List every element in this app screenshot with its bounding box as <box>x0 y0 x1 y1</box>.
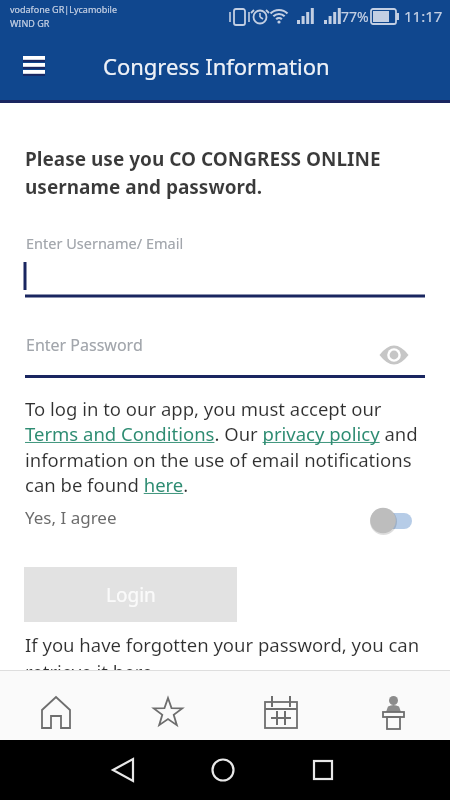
staticText: information on the use of email notifica… <box>25 447 412 472</box>
staticText: Login <box>106 582 156 608</box>
button[interactable] <box>146 472 186 498</box>
staticText: WIND GR <box>10 17 50 29</box>
staticText: If you have forgotten your password, you… <box>25 632 420 657</box>
staticText: Enter Username/ Email <box>26 233 184 253</box>
button[interactable] <box>295 745 351 795</box>
button[interactable] <box>95 745 151 795</box>
staticText: To log in to our app, you must accept ou… <box>25 396 382 421</box>
button[interactable] <box>378 340 414 370</box>
button[interactable] <box>12 45 56 89</box>
button[interactable] <box>112 670 225 740</box>
staticText: 77% <box>341 7 369 26</box>
staticText: Congress Information <box>103 51 330 81</box>
button[interactable] <box>25 330 425 378</box>
button[interactable] <box>25 421 213 447</box>
staticText: can be found here. <box>25 472 189 497</box>
staticText: username and password. <box>25 174 263 200</box>
button[interactable] <box>261 421 380 447</box>
button[interactable] <box>25 235 425 297</box>
staticText: Enter Password <box>26 334 143 356</box>
staticText: Terms and Conditions. Our privacy policy… <box>25 421 418 446</box>
button[interactable] <box>225 670 338 740</box>
staticText: Please use you CO CONGRESS ONLINE <box>25 146 381 172</box>
button[interactable] <box>0 670 112 740</box>
staticText: vodafone GR|Lycamobile <box>10 3 118 15</box>
staticText: 11:17 <box>404 6 443 26</box>
staticText: Yes, I agree <box>25 506 117 529</box>
button[interactable] <box>338 670 450 740</box>
button[interactable] <box>195 745 251 795</box>
button[interactable] <box>360 500 420 540</box>
button[interactable]: Login <box>24 567 237 622</box>
staticText: retrieve it here. <box>25 659 158 684</box>
